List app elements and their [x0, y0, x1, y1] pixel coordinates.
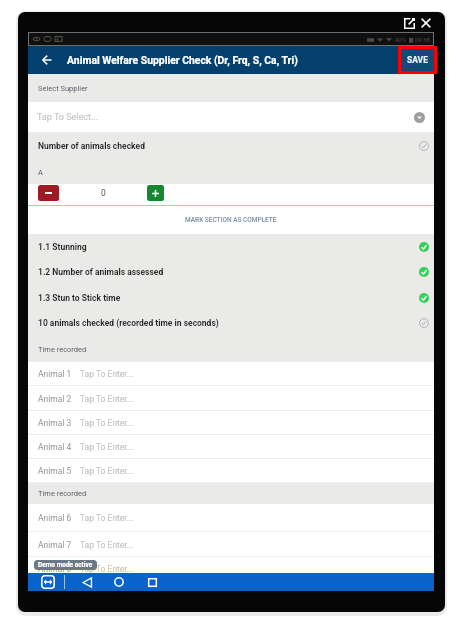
- staticText: Time recorded: [38, 489, 87, 498]
- button[interactable]: Animal 8: [28, 557, 434, 581]
- button[interactable]: Animal 7: [28, 532, 434, 557]
- staticText: 09:38: [415, 36, 430, 43]
- staticText: Animal 6: [38, 513, 72, 523]
- button[interactable]: Increase: [147, 185, 164, 201]
- staticText: Animal 2: [38, 394, 72, 404]
- button[interactable]: Number of animals checked: [28, 132, 434, 160]
- button[interactable]: Home: [111, 574, 127, 590]
- staticText: MARK SECTION AS COMPLETE: [185, 216, 277, 224]
- staticText: Animal 5: [38, 466, 72, 476]
- button[interactable]: Tap To Select...: [28, 102, 434, 132]
- button[interactable]: Select Supplier: [28, 74, 434, 102]
- staticText: Tap To Enter...: [80, 540, 134, 550]
- staticText: 1.3 Stun to Stick time: [38, 293, 121, 303]
- staticText: Animal 3: [38, 418, 72, 428]
- button[interactable]: 1.1 Stunning: [28, 234, 434, 259]
- button[interactable]: Animal 2: [28, 386, 434, 411]
- button[interactable]: 1.2 Number of animals assessed: [28, 259, 434, 285]
- button[interactable]: Animal 5: [28, 459, 434, 483]
- button[interactable]: A: [28, 160, 434, 184]
- staticText: Tap To Select...: [37, 112, 99, 123]
- button[interactable]: MARK SECTION AS COMPLETE: [28, 206, 434, 234]
- staticText: 1.2 Number of animals assessed: [38, 267, 164, 277]
- staticText: Time recorded: [38, 345, 87, 354]
- staticText: 0: [101, 188, 106, 198]
- button[interactable]: Animal 1: [28, 362, 434, 386]
- button[interactable]: Decrease: [38, 185, 59, 201]
- staticText: Animal 1: [38, 369, 72, 379]
- staticText: Tap To Enter...: [80, 394, 134, 404]
- staticText: A: [38, 168, 43, 177]
- staticText: 10 animals checked (recorded time in sec…: [38, 318, 219, 328]
- button[interactable]: Time recorded: [28, 336, 434, 362]
- staticText: 40%: [395, 36, 407, 43]
- button[interactable]: Animal 6: [28, 504, 434, 532]
- staticText: Animal 7: [38, 540, 72, 550]
- button[interactable]: Close: [421, 18, 431, 28]
- staticText: Tap To Enter...: [80, 369, 134, 379]
- button[interactable]: Animal 4: [28, 435, 434, 459]
- staticText: Tap To Enter...: [80, 466, 134, 476]
- button[interactable]: Resize window: [40, 574, 56, 590]
- staticText: Animal 4: [38, 442, 72, 452]
- staticText: Tap To Enter...: [80, 418, 134, 428]
- staticText: Animal Welfare Supplier Check (Dr, Frq, …: [67, 54, 298, 66]
- staticText: 1.1 Stunning: [38, 242, 87, 252]
- button[interactable]: 1.3 Stun to Stick time: [28, 285, 434, 310]
- button[interactable]: Animal 3: [28, 411, 434, 435]
- button[interactable]: Pop out: [404, 18, 415, 29]
- button[interactable]: Time recorded: [28, 483, 434, 504]
- button[interactable]: Recent apps: [144, 574, 160, 590]
- button[interactable]: SAVE: [401, 49, 434, 71]
- staticText: Tap To Enter...: [80, 442, 134, 452]
- staticText: Demo mode active: [38, 561, 93, 569]
- staticText: Animal 8: [38, 564, 72, 574]
- button[interactable]: Back: [40, 53, 54, 67]
- button[interactable]: Back: [79, 574, 95, 590]
- staticText: Select Supplier: [38, 84, 88, 93]
- staticText: SAVE: [407, 55, 428, 65]
- staticText: Tap To Enter...: [80, 513, 134, 523]
- staticText: Tap To Enter...: [80, 564, 134, 574]
- button[interactable]: 10 animals checked (recorded time in sec…: [28, 310, 434, 336]
- staticText: Number of animals checked: [38, 141, 145, 151]
